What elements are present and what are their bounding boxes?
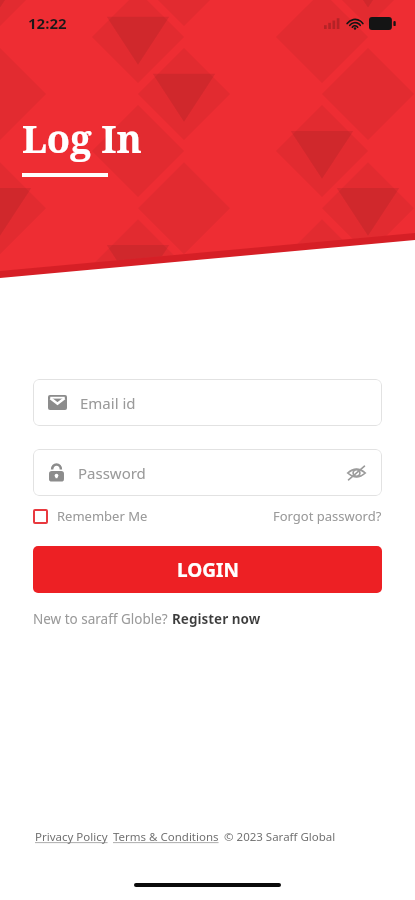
staticText: Privacy Policy (35, 829, 108, 845)
button[interactable]: Email (33, 379, 382, 426)
button[interactable]: LOGIN (33, 546, 382, 593)
button[interactable]: Show password (346, 464, 367, 482)
button[interactable]: Terms & Conditions (113, 829, 219, 845)
staticText: Remember Me (57, 507, 148, 525)
button[interactable]: Remember Me (33, 507, 148, 525)
button[interactable]: Forgot password? (273, 507, 382, 525)
staticText: Forgot password? (273, 507, 382, 525)
staticText: Password (78, 463, 146, 483)
other: Password (48, 463, 65, 482)
staticText: Email id (80, 393, 136, 413)
staticText: Log In (22, 112, 142, 164)
staticText: New to saraff Globle? (33, 610, 172, 628)
button[interactable]: Privacy Policy (35, 829, 108, 845)
other: Email (48, 395, 67, 410)
staticText: Terms & Conditions (113, 829, 219, 845)
staticText: Register now (172, 610, 261, 628)
button[interactable]: Password (33, 449, 382, 496)
button[interactable]: Register now (172, 610, 261, 628)
staticText: © 2023 Saraff Global (224, 829, 336, 845)
staticText: LOGIN (177, 557, 239, 583)
staticText: 12:22 (28, 13, 67, 33)
